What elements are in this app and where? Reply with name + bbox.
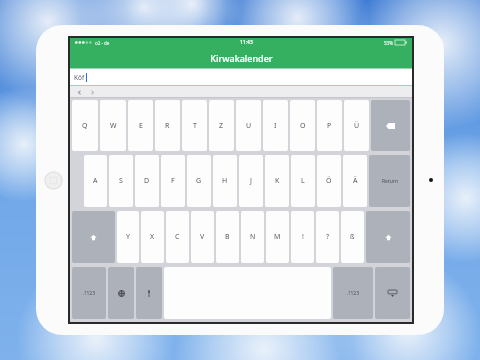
staticText: 11:43: [240, 39, 253, 46]
button[interactable]: ?: [316, 211, 339, 263]
button[interactable]: !: [291, 211, 314, 263]
staticText: O: [300, 121, 306, 131]
button[interactable]: Next field: [87, 87, 97, 97]
button[interactable]: Previous field: [74, 87, 84, 97]
staticText: B: [225, 232, 230, 242]
staticText: E: [139, 121, 143, 131]
button[interactable]: O: [290, 100, 315, 151]
button[interactable]: E: [128, 100, 153, 151]
staticText: ?: [326, 232, 330, 242]
button[interactable]: X: [141, 211, 164, 263]
button[interactable]: .?123: [333, 267, 373, 319]
staticText: M: [274, 232, 281, 242]
button[interactable]: U: [236, 100, 261, 151]
staticText: C: [175, 232, 180, 242]
button[interactable]: .?123: [72, 267, 106, 319]
staticText: !: [302, 232, 304, 242]
button[interactable]: Köf: [70, 68, 412, 86]
button[interactable]: Y: [117, 211, 139, 263]
staticText: P: [327, 121, 332, 131]
button[interactable]: T: [182, 100, 207, 151]
button[interactable]: B: [216, 211, 239, 263]
button[interactable]: R: [155, 100, 180, 151]
staticText: Köf: [74, 73, 85, 82]
staticText: Return: [382, 178, 398, 185]
staticText: S: [119, 176, 123, 186]
staticText: Kirwakalender: [210, 52, 273, 64]
button[interactable]: Change keyboard: [108, 267, 134, 319]
button[interactable]: D: [135, 155, 159, 207]
button[interactable]: Ü: [344, 100, 369, 151]
button[interactable]: N: [241, 211, 264, 263]
staticText: L: [301, 176, 305, 186]
staticText: Ö: [326, 176, 332, 186]
staticText: Ä: [353, 176, 358, 186]
button[interactable]: V: [191, 211, 214, 263]
button[interactable]: Z: [209, 100, 234, 151]
staticText: Z: [219, 121, 224, 131]
staticText: G: [196, 176, 202, 186]
button[interactable]: Ö: [317, 155, 341, 207]
button[interactable]: Backspace: [371, 100, 410, 151]
button[interactable]: Q: [72, 100, 98, 151]
staticText: U: [246, 121, 252, 131]
staticText: o2 - de: [95, 40, 110, 46]
staticText: Q: [82, 121, 88, 131]
staticText: I: [274, 121, 277, 131]
staticText: A: [93, 176, 98, 186]
button[interactable]: J: [239, 155, 263, 207]
staticText: X: [150, 232, 155, 242]
button[interactable]: L: [291, 155, 315, 207]
staticText: 53%: [384, 40, 393, 46]
button[interactable]: S: [109, 155, 133, 207]
button[interactable]: Shift: [72, 211, 115, 263]
button[interactable]: A: [84, 155, 107, 207]
staticText: J: [250, 176, 252, 186]
button[interactable]: ß: [341, 211, 364, 263]
staticText: R: [165, 121, 170, 131]
button[interactable]: P: [317, 100, 342, 151]
button[interactable]: F: [161, 155, 185, 207]
staticText: V: [200, 232, 205, 242]
button[interactable]: I: [263, 100, 288, 151]
staticText: Y: [126, 232, 130, 242]
staticText: F: [171, 176, 175, 186]
button[interactable]: Home: [44, 171, 63, 190]
button[interactable]: W: [100, 100, 126, 151]
staticText: K: [275, 176, 280, 186]
staticText: D: [144, 176, 150, 186]
staticText: .?123: [83, 290, 96, 297]
staticText: ß: [350, 232, 355, 242]
staticText: W: [110, 121, 117, 131]
button[interactable]: G: [187, 155, 211, 207]
button[interactable]: H: [213, 155, 237, 207]
button[interactable]: Return: [369, 155, 410, 207]
button[interactable]: Ä: [343, 155, 367, 207]
button[interactable]: Dictate: [136, 267, 162, 319]
staticText: T: [193, 121, 197, 131]
button[interactable]: Shift: [366, 211, 410, 263]
staticText: H: [222, 176, 228, 186]
button[interactable]: M: [266, 211, 289, 263]
staticText: N: [250, 232, 256, 242]
staticText: .?123: [347, 290, 360, 297]
staticText: Ü: [354, 121, 360, 131]
button[interactable]: C: [166, 211, 189, 263]
button[interactable]: Hide keyboard: [375, 267, 410, 319]
button[interactable]: K: [265, 155, 289, 207]
